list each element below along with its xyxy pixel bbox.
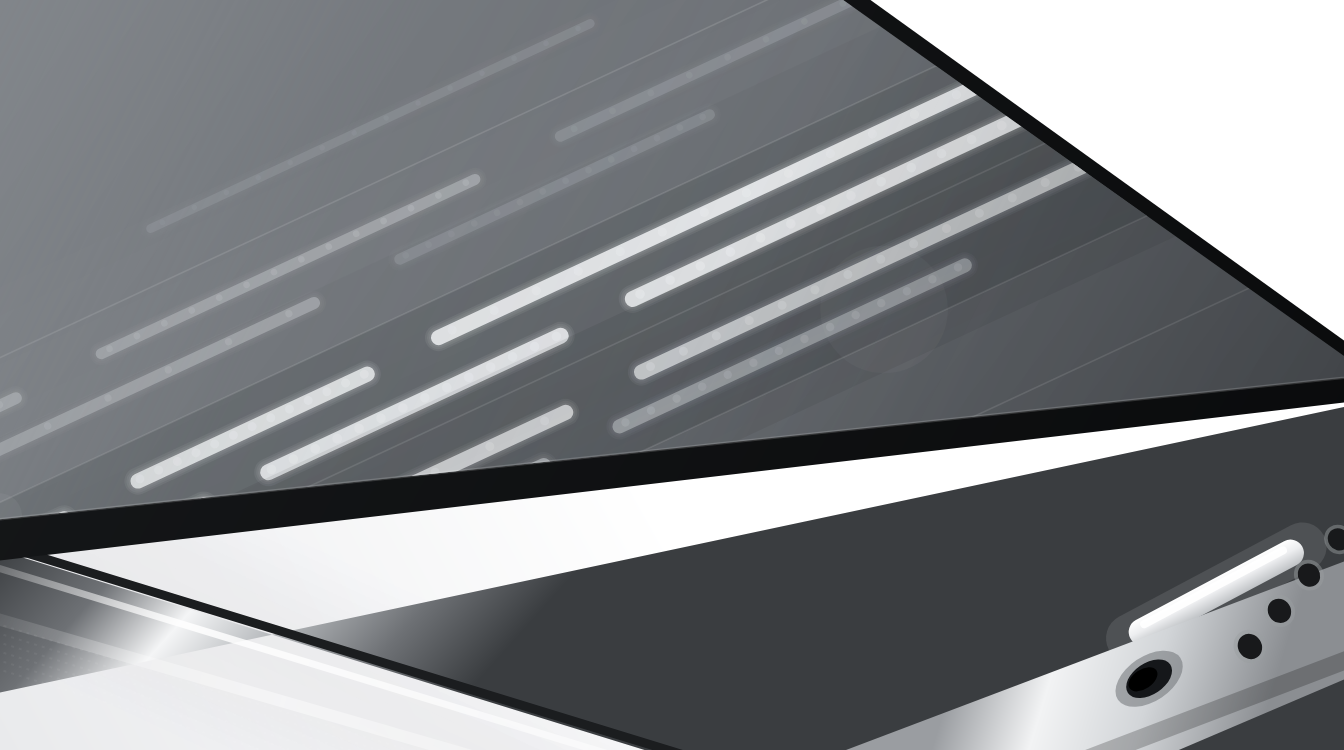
button[interactable]: Phone showing a dark list screen — [0, 0, 1344, 750]
